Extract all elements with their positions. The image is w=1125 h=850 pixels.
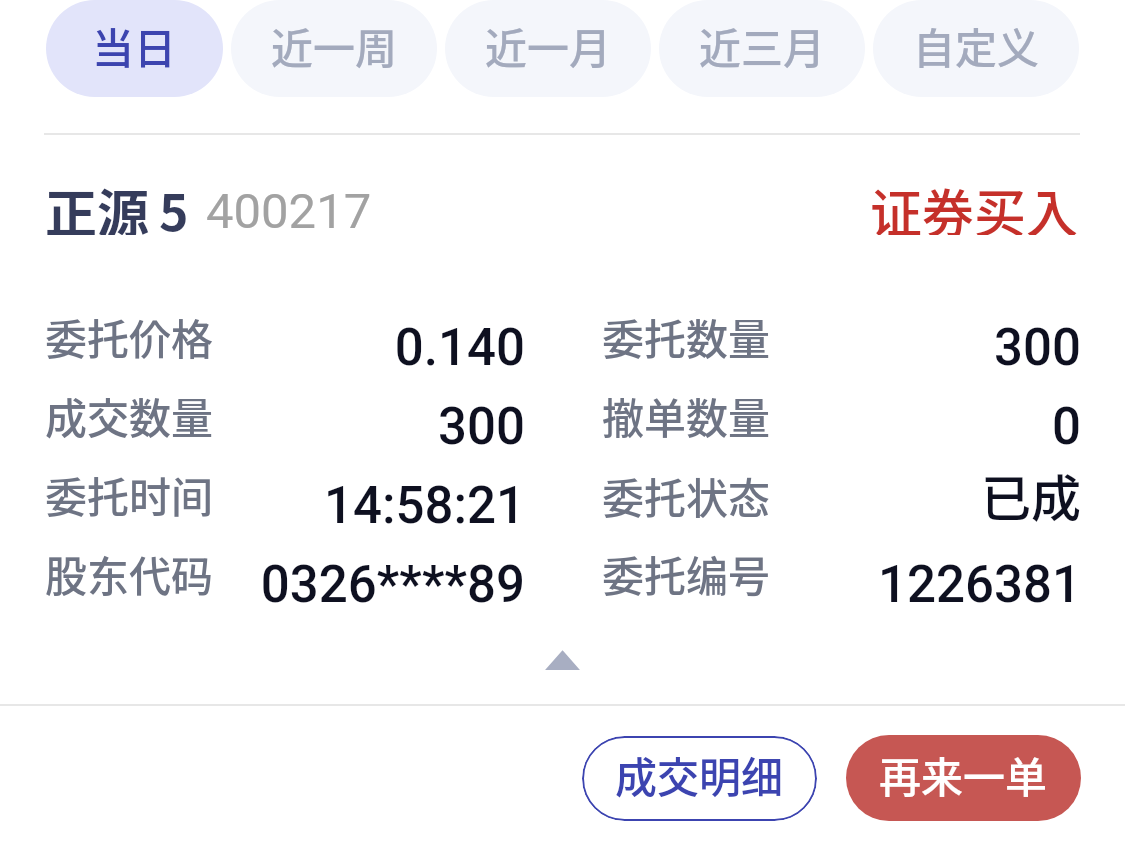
staticText: 近一周: [271, 15, 398, 76]
staticText: 近一月: [485, 15, 612, 76]
button[interactable]: 自定义: [873, 0, 1079, 97]
staticText: 股东代码: [45, 543, 214, 604]
staticText: 5: [159, 173, 189, 235]
staticText: 300: [214, 397, 525, 457]
staticText: 0.140: [214, 318, 525, 378]
staticText: 委托编号: [602, 543, 771, 604]
button[interactable]: 成交明细: [582, 736, 817, 821]
staticText: 撤单数量: [602, 385, 771, 446]
button[interactable]: 再来一单: [846, 735, 1081, 821]
staticText: 300: [771, 318, 1081, 378]
staticText: 0: [771, 397, 1081, 457]
button[interactable]: 近一月: [445, 0, 651, 97]
staticText: 再来一单: [879, 744, 1048, 805]
staticText: 0326****89: [214, 555, 525, 615]
staticText: 委托价格: [45, 306, 214, 367]
staticText: 400217: [206, 183, 372, 240]
button[interactable]: 当日: [46, 0, 223, 97]
staticText: 自定义: [913, 15, 1040, 76]
staticText: 14:58:21: [214, 476, 525, 536]
staticText: 当日: [92, 15, 177, 76]
staticText: 已成: [771, 459, 1081, 531]
button[interactable]: 近一周: [231, 0, 437, 97]
staticText: 近三月: [699, 15, 826, 76]
staticText: 正源: [45, 173, 150, 235]
staticText: 委托数量: [602, 306, 771, 367]
button[interactable]: 近三月: [659, 0, 865, 97]
staticText: 证券买入: [870, 173, 1079, 235]
staticText: 成交数量: [45, 385, 214, 446]
staticText: 委托状态: [602, 465, 771, 526]
staticText: 委托时间: [45, 464, 214, 525]
button[interactable]: Collapse details: [0, 625, 1125, 695]
staticText: 1226381: [771, 555, 1081, 615]
staticText: 成交明细: [615, 744, 784, 805]
